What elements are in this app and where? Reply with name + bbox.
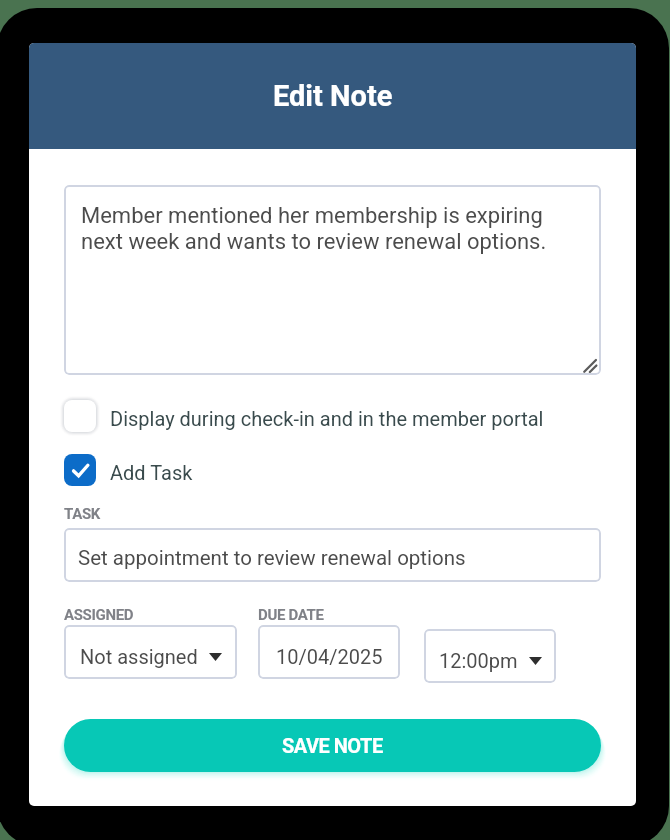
button[interactable]: 10/04/2025	[258, 625, 400, 679]
staticText: Not assigned	[80, 645, 198, 668]
button[interactable]: Add Task	[64, 454, 193, 486]
staticText: ASSIGNED	[64, 606, 134, 624]
staticText: Set appointment to review renewal option…	[78, 546, 466, 570]
other: Open picker	[209, 653, 222, 661]
staticText: Display during check-in and in the membe…	[110, 407, 544, 430]
staticText: 10/04/2025	[276, 645, 383, 668]
button[interactable]: Set appointment to review renewal option…	[64, 528, 601, 582]
button[interactable]: 12:00pm	[424, 629, 556, 683]
other: Open picker	[529, 657, 542, 665]
button[interactable]: Not assigned	[64, 625, 237, 679]
staticText: SAVE NOTE	[282, 734, 383, 757]
button[interactable]: Display during check-in and in the membe…	[64, 400, 544, 432]
staticText: Edit Note	[273, 79, 393, 113]
staticText: TASK	[64, 505, 100, 523]
button[interactable]: Member mentioned her membership is expir…	[64, 185, 601, 375]
staticText: Add Task	[110, 461, 193, 484]
staticText: Member mentioned her membership is expir…	[81, 203, 585, 255]
button[interactable]: SAVE NOTE	[64, 719, 601, 772]
staticText: 12:00pm	[439, 649, 518, 672]
staticText: DUE DATE	[258, 606, 324, 624]
